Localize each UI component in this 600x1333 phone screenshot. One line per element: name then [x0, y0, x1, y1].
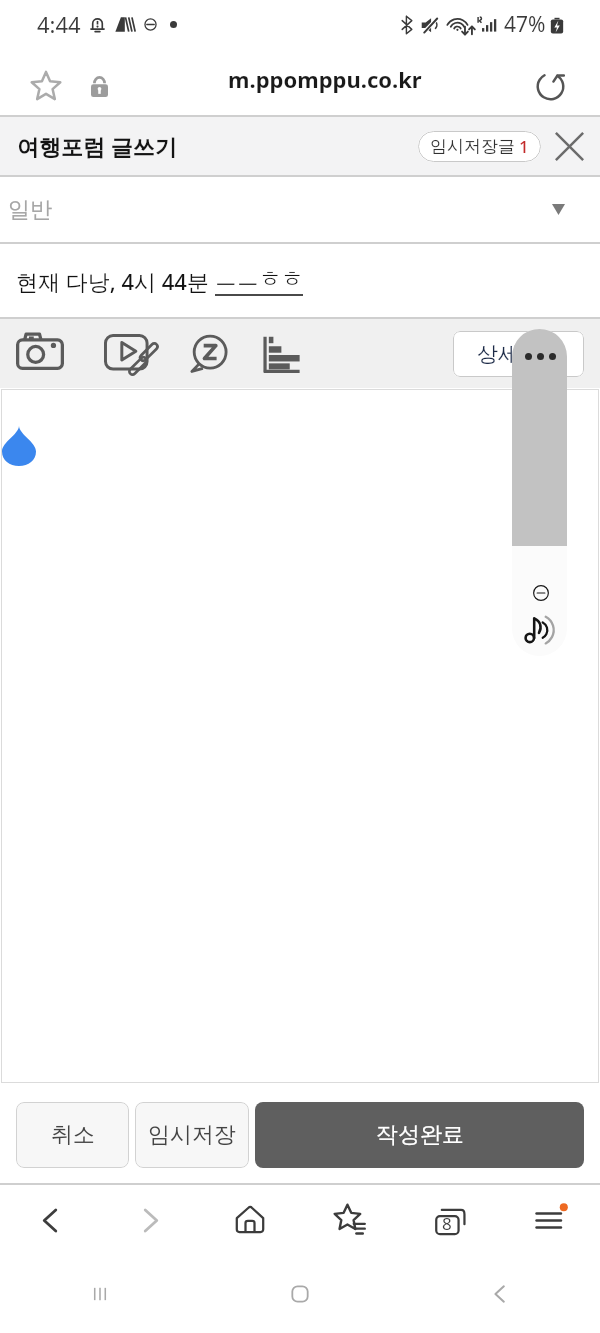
button[interactable]: Site security — [78, 65, 120, 107]
staticText: 47% — [504, 10, 546, 39]
staticText: ㅡㅡㅎㅎ — [215, 265, 303, 293]
button[interactable]: 상세설정 — [453, 331, 584, 377]
button[interactable]: 임시저장 — [135, 1102, 249, 1168]
button[interactable]: Menu — [500, 1185, 600, 1255]
button[interactable]: 임시저장글 — [418, 131, 541, 162]
button[interactable]: Back — [0, 1185, 100, 1255]
button[interactable]: Forward — [100, 1185, 200, 1255]
button[interactable]: Volume — [512, 329, 567, 656]
button[interactable]: Insert poll — [251, 325, 311, 385]
staticText: 임시저장 — [148, 1121, 236, 1149]
button[interactable] — [1, 389, 599, 1083]
button[interactable]: m.ppomppu.co.kr — [228, 64, 422, 94]
button[interactable]: Insert sticker — [179, 324, 239, 384]
button[interactable]: Close — [545, 122, 593, 170]
button[interactable]: Insert video link — [101, 325, 161, 385]
button[interactable]: Recent apps — [0, 1255, 200, 1333]
staticText: 일반 — [8, 196, 52, 224]
staticText: 임시저장글 — [430, 136, 515, 157]
button[interactable]: 작성완료 — [255, 1102, 584, 1168]
button[interactable]: Back — [400, 1255, 600, 1333]
staticText: 8 — [442, 1212, 452, 1235]
button[interactable]: 취소 — [16, 1102, 129, 1168]
button[interactable]: Bookmarks — [300, 1185, 400, 1255]
button[interactable]: Tabs — [400, 1185, 500, 1255]
button[interactable]: 현재 다낭, 4시 44분 — [0, 244, 600, 317]
staticText: 상세설정 — [477, 341, 561, 367]
staticText: 작성완료 — [376, 1121, 464, 1149]
button[interactable]: 일반 — [0, 177, 600, 242]
staticText: 1 — [519, 135, 529, 158]
button[interactable]: Bookmark — [22, 62, 70, 110]
button[interactable]: Insert photo — [10, 320, 70, 380]
staticText: 현재 다낭, 4시 44분 — [16, 266, 215, 296]
staticText: 취소 — [51, 1121, 95, 1149]
button[interactable]: Home — [200, 1255, 400, 1333]
button[interactable]: Reload — [528, 64, 572, 108]
button[interactable]: Home — [200, 1185, 300, 1255]
staticText: 4:44 — [37, 9, 81, 39]
button[interactable]: 여행포럼 글쓰기 — [17, 131, 177, 161]
